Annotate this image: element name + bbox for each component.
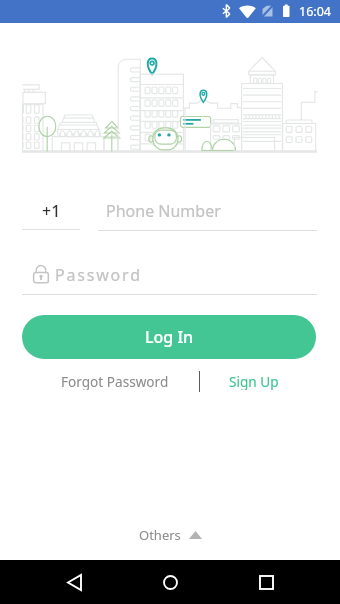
staticText: +1 xyxy=(42,200,61,221)
button[interactable]: Forgot Password xyxy=(54,368,176,394)
button[interactable]: Password xyxy=(22,264,317,295)
button[interactable]: Recent apps xyxy=(244,560,288,604)
staticText: Password xyxy=(55,264,142,285)
button[interactable]: Back xyxy=(52,560,96,604)
button[interactable]: Log In xyxy=(22,315,316,359)
staticText: 16:04 xyxy=(299,3,331,20)
button[interactable]: Phone Number xyxy=(98,200,317,231)
button[interactable]: Sign Up xyxy=(222,368,286,394)
staticText: Log In xyxy=(145,326,194,348)
button[interactable]: Others xyxy=(129,520,212,550)
staticText: Forgot Password xyxy=(61,372,169,390)
button[interactable]: Home xyxy=(148,560,192,604)
staticText: Phone Number xyxy=(106,200,221,221)
staticText: Sign Up xyxy=(229,372,279,390)
staticText: Others xyxy=(139,526,181,544)
button[interactable]: +1 xyxy=(22,200,80,230)
